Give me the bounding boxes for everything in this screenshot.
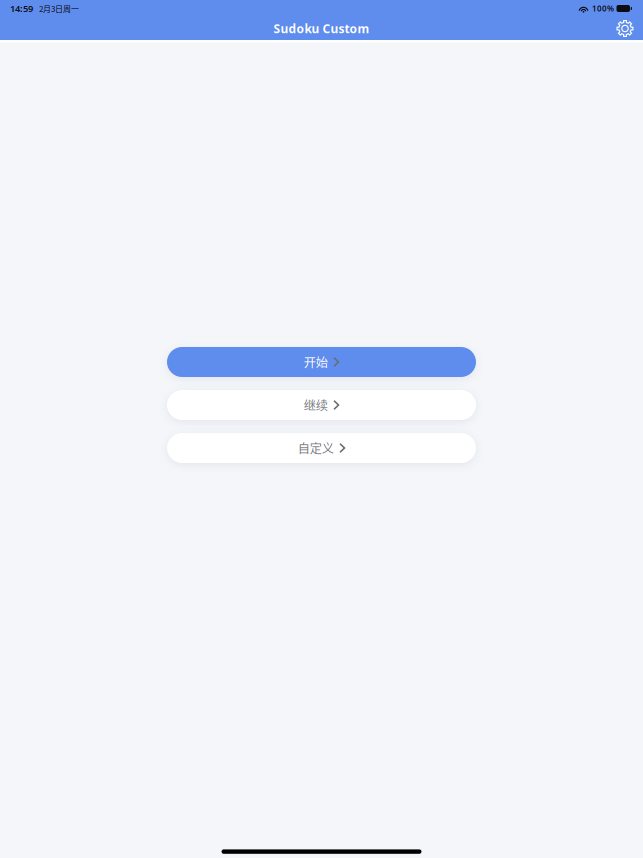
staticText: Sudoku Custom [273,20,369,36]
staticText: 继续 [304,396,328,414]
staticText: 14:59 [10,2,33,15]
button[interactable]: 继续 [167,390,476,420]
staticText: 2月3日周一 [39,3,79,14]
staticText: 100% [592,3,614,14]
staticText: 自定义 [298,439,334,457]
button[interactable]: 开始 [167,347,476,377]
staticText: 开始 [304,353,328,371]
button[interactable]: 自定义 [167,433,476,463]
button[interactable]: Settings [610,17,640,40]
